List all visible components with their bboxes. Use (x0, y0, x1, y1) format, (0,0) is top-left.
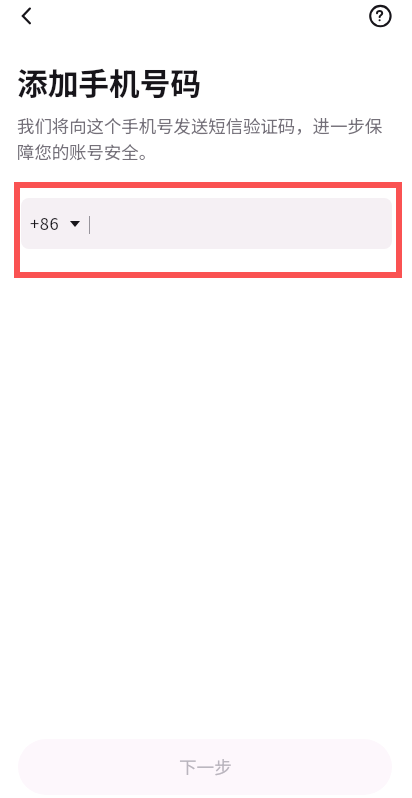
button[interactable]: Help (362, 0, 396, 34)
staticText: 我们将向这个手机号发送短信验证码，进一步保障您的账号安全。 (17, 113, 389, 164)
button[interactable]: 下一步 (18, 739, 392, 795)
staticText: 下一步 (179, 754, 232, 779)
staticText: 添加手机号码 (17, 59, 202, 103)
staticText: +86 (30, 211, 60, 235)
button[interactable]: +86 (21, 198, 392, 249)
button[interactable]: +86 (21, 198, 89, 248)
button[interactable]: Back (6, 0, 40, 34)
